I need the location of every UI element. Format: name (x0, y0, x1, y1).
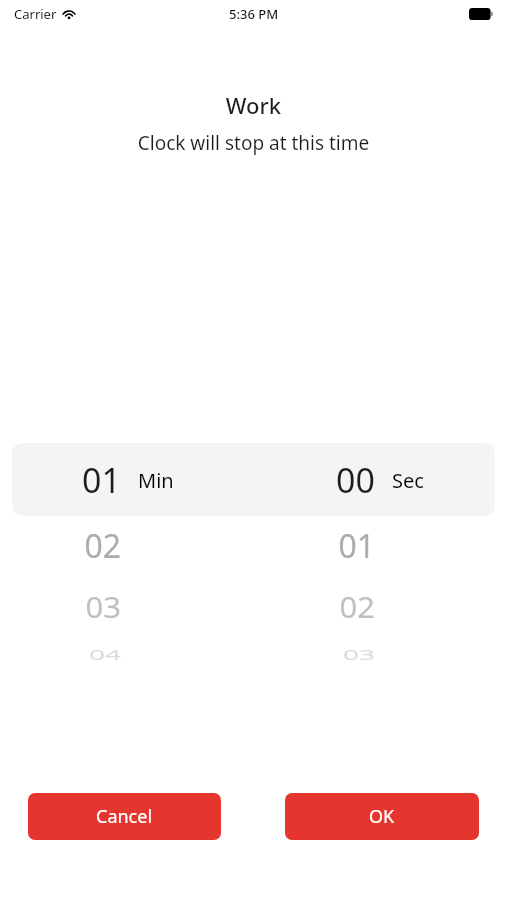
staticText: 03 (342, 645, 375, 663)
button[interactable]: 00 (253, 443, 507, 690)
button[interactable]: Cancel (28, 793, 221, 840)
staticText: 04 (88, 645, 121, 663)
staticText: 01 (82, 457, 121, 503)
staticText: 03 (85, 586, 121, 626)
staticText: Carrier (14, 5, 57, 23)
button[interactable]: 01 (0, 443, 253, 690)
staticText: 02 (339, 586, 375, 626)
staticText: 00 (336, 457, 375, 503)
staticText: OK (369, 804, 395, 829)
button[interactable]: OK (285, 793, 479, 840)
staticText: 01 (338, 524, 375, 568)
staticText: Cancel (96, 804, 153, 829)
staticText: Work (0, 90, 507, 120)
staticText: Min (138, 467, 174, 494)
staticText: 02 (84, 524, 121, 568)
staticText: Sec (392, 467, 424, 494)
staticText: Clock will stop at this time (0, 130, 507, 156)
staticText: 5:36 PM (229, 5, 279, 23)
